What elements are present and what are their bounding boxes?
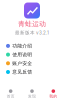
staticText: 功能介绍 [12,43,32,49]
staticText: 使用说明 [12,52,32,58]
staticText: 我的 [49,94,57,99]
button[interactable]: 首页 [0,88,21,100]
staticText: 账户安全 [12,60,32,66]
button[interactable]: 功能介绍 [0,41,64,50]
button[interactable]: 使用说明 [0,50,64,59]
button[interactable]: 我的 [43,88,64,100]
staticText: 首页 [7,94,15,99]
staticText: 最新版本 v3.2.1 [15,30,49,35]
staticText: 青蛙运动 [18,19,46,28]
staticText: 发现 [28,94,36,99]
button[interactable]: 发现 [21,88,43,100]
button[interactable]: 账户安全 [0,59,64,68]
button[interactable]: 意见反馈 [0,68,64,76]
staticText: 意见反馈 [12,69,32,75]
